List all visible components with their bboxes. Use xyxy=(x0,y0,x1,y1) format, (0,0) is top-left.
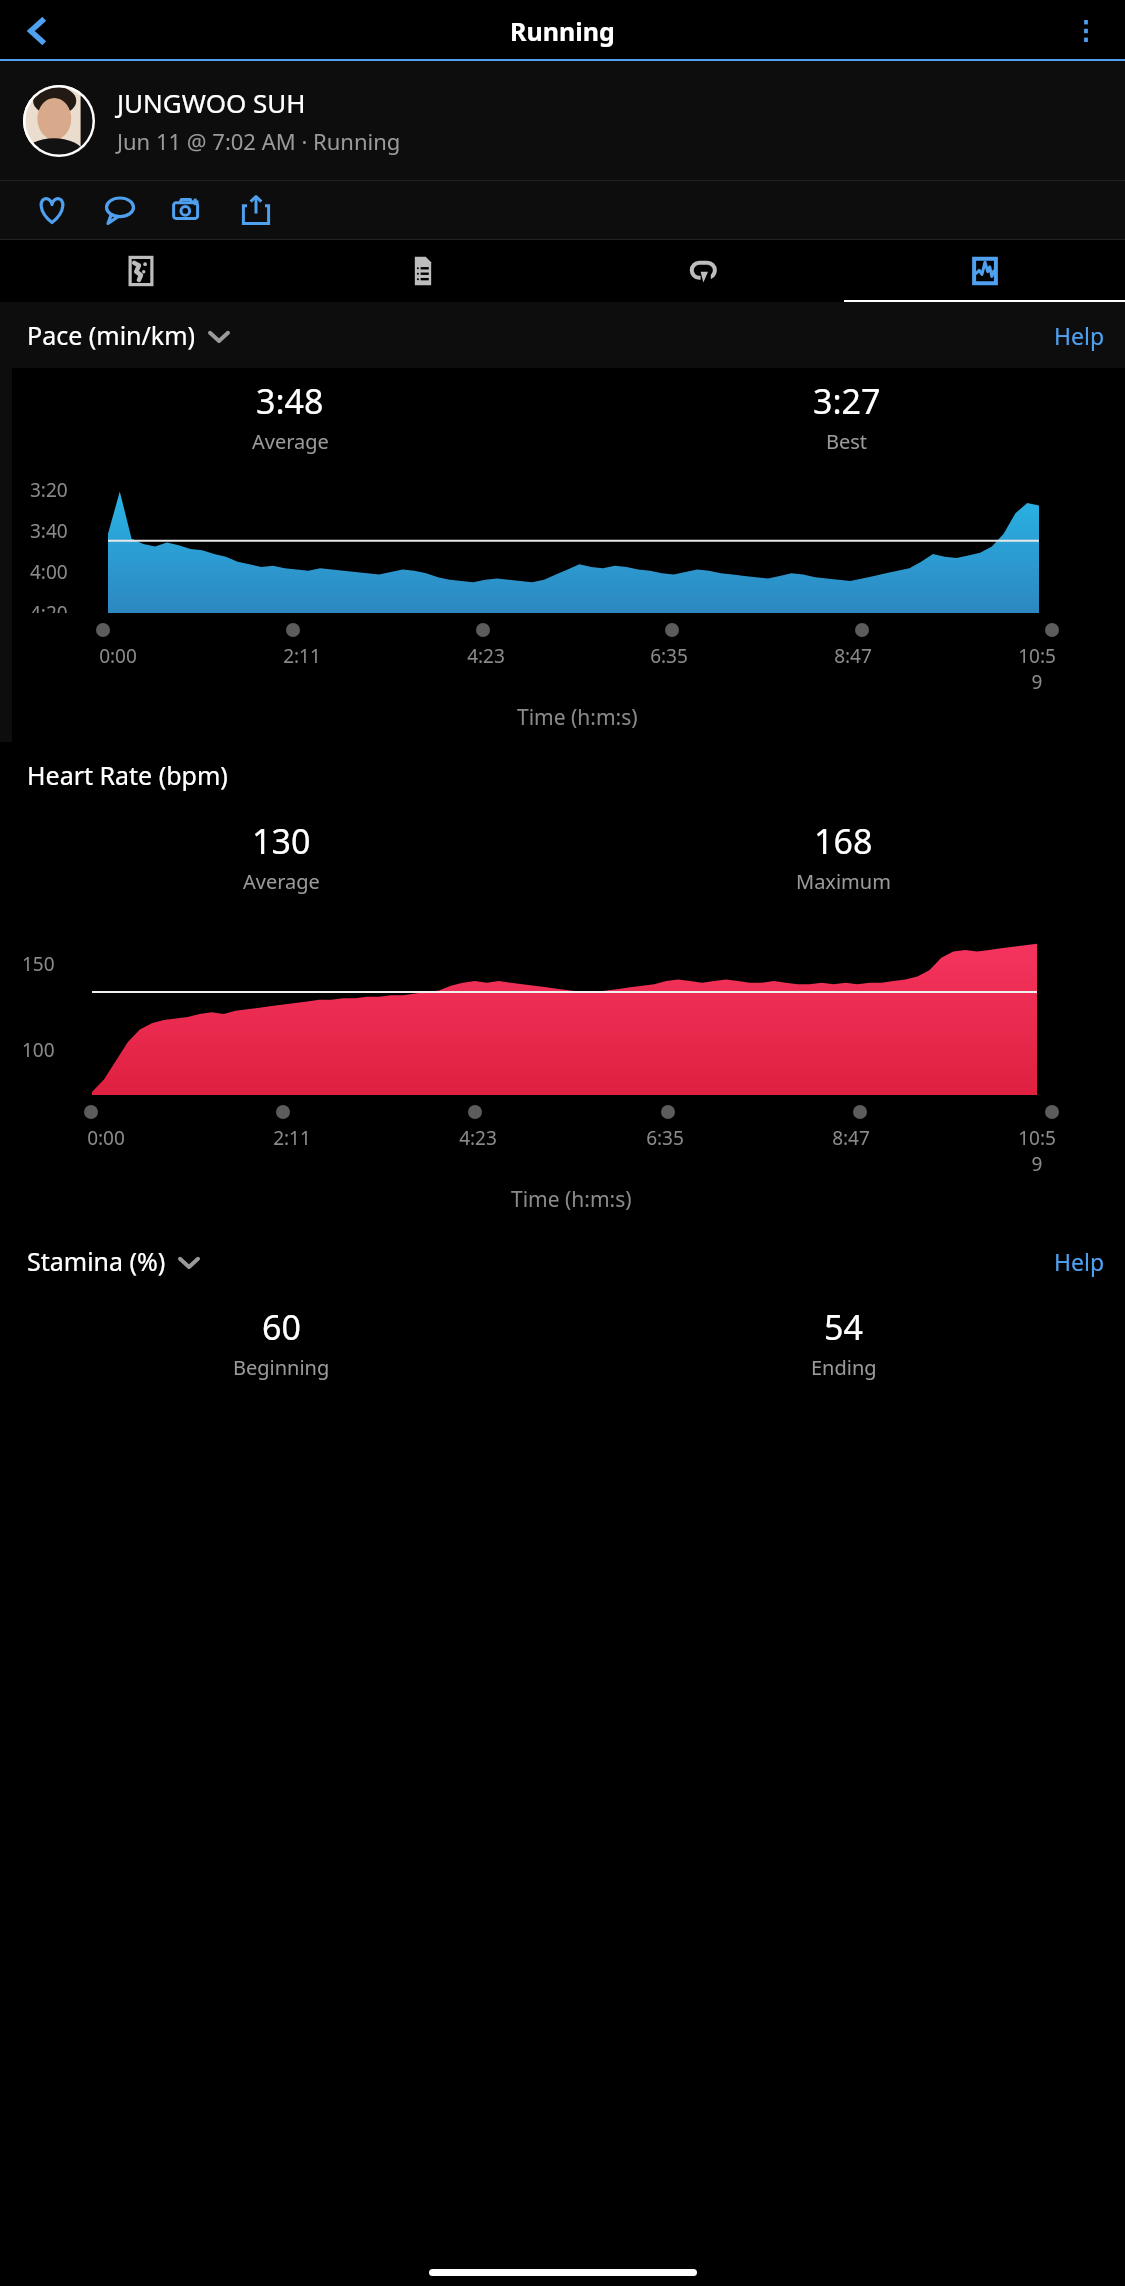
staticText: Stamina (%) xyxy=(27,1244,166,1278)
button[interactable]: Stamina (%) xyxy=(27,1244,198,1278)
staticText: 2:11 xyxy=(283,643,321,669)
staticText: 4:00 xyxy=(30,559,68,585)
button[interactable]: Back xyxy=(14,8,60,54)
staticText: 100 xyxy=(22,1037,55,1063)
staticText: 60 xyxy=(262,1304,301,1350)
staticText: 4:23 xyxy=(467,643,505,669)
staticText: Jun 11 @ 7:02 AM · Running xyxy=(117,126,401,156)
staticText: 8:47 xyxy=(832,1125,870,1151)
button[interactable]: Laps xyxy=(563,240,844,302)
staticText: Maximum xyxy=(796,868,891,895)
staticText: Running xyxy=(510,14,615,48)
staticText: 3:40 xyxy=(30,518,68,544)
staticText: Heart Rate (bpm) xyxy=(27,758,228,792)
button[interactable]: Heart Rate (bpm) xyxy=(27,758,228,792)
button[interactable]: Comment xyxy=(86,181,154,239)
staticText: Help xyxy=(1054,1246,1105,1277)
button[interactable]: Charts xyxy=(844,240,1125,302)
staticText: Ending xyxy=(811,1354,877,1381)
staticText: Average xyxy=(252,428,329,455)
staticText: 3:48 xyxy=(256,378,324,424)
staticText: 3:20 xyxy=(30,477,68,503)
staticText: 130 xyxy=(252,818,311,864)
button[interactable]: Like xyxy=(18,181,86,239)
staticText: 0:00 xyxy=(99,643,137,669)
staticText: 0:00 xyxy=(87,1125,125,1151)
button[interactable]: Add photo xyxy=(154,181,222,239)
staticText: 4:23 xyxy=(459,1125,497,1151)
staticText: Pace (min/km) xyxy=(27,318,196,352)
staticText: Beginning xyxy=(233,1354,330,1381)
button[interactable]: Details xyxy=(282,240,563,302)
button[interactable]: JUNGWOO SUH xyxy=(0,61,1125,180)
staticText: 6:35 xyxy=(650,643,688,669)
button[interactable]: Help xyxy=(1054,320,1105,351)
staticText: 54 xyxy=(824,1304,863,1350)
staticText: 150 xyxy=(22,951,55,977)
staticText: 168 xyxy=(814,818,873,864)
staticText: Time (h:m:s) xyxy=(517,703,638,732)
staticText: 8:47 xyxy=(834,643,872,669)
button[interactable]: Share xyxy=(222,181,290,239)
staticText: Help xyxy=(1054,320,1105,351)
button[interactable]: Help xyxy=(1054,1246,1105,1277)
staticText: 10:59 xyxy=(1015,1125,1059,1177)
staticText: 6:35 xyxy=(646,1125,684,1151)
staticText: Best xyxy=(826,428,868,455)
button[interactable]: Map xyxy=(0,240,282,302)
staticText: 4:20 xyxy=(30,600,68,613)
staticText: 2:11 xyxy=(273,1125,311,1151)
staticText: JUNGWOO SUH xyxy=(117,85,306,120)
button[interactable]: More options xyxy=(1063,8,1109,54)
staticText: 3:27 xyxy=(813,378,881,424)
button[interactable]: Pace (min/km) xyxy=(27,318,228,352)
staticText: 10:59 xyxy=(1015,643,1059,695)
staticText: Time (h:m:s) xyxy=(511,1185,632,1214)
staticText: Average xyxy=(243,868,320,895)
